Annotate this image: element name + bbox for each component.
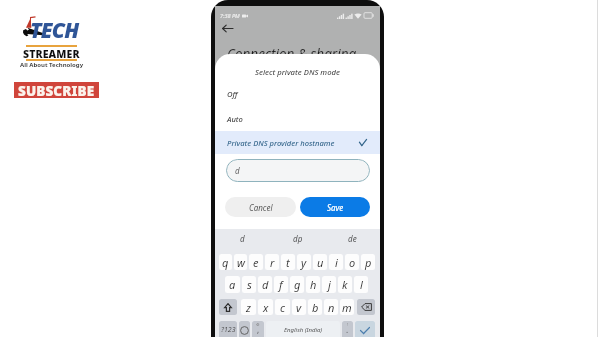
- staticText: m: [342, 300, 352, 315]
- staticText: Off: [227, 89, 238, 99]
- staticText: d: [235, 165, 240, 176]
- button[interactable]: q: [219, 254, 232, 270]
- staticText: j: [328, 277, 331, 292]
- staticText: English (India): [284, 326, 323, 334]
- staticText: Save: [327, 202, 344, 213]
- button[interactable]: t: [281, 254, 295, 270]
- button[interactable]: Shift: [219, 299, 237, 315]
- button[interactable]: j: [322, 276, 336, 293]
- button[interactable]: Back: [217, 18, 238, 39]
- staticText: ⚙: [256, 322, 260, 327]
- button[interactable]: Auto: [215, 107, 380, 130]
- staticText: x: [263, 300, 269, 315]
- button[interactable]: Enter: [355, 321, 375, 337]
- staticText: e: [253, 255, 259, 270]
- button[interactable]: Off: [215, 82, 380, 105]
- staticText: k: [342, 277, 348, 292]
- staticText: Select private DNS mode: [215, 67, 380, 77]
- staticText: s: [247, 277, 252, 292]
- button[interactable]: z: [241, 299, 256, 315]
- staticText: !: [347, 322, 349, 327]
- button[interactable]: i: [329, 254, 343, 270]
- staticText: w: [237, 255, 245, 270]
- staticText: g: [294, 277, 301, 292]
- button[interactable]: x: [258, 299, 273, 315]
- staticText: TECH: [30, 16, 79, 45]
- button[interactable]: h: [306, 276, 320, 293]
- staticText: Cancel: [249, 202, 273, 213]
- button[interactable]: d: [226, 159, 370, 182]
- button[interactable]: w: [234, 254, 247, 270]
- button[interactable]: g: [290, 276, 304, 293]
- button[interactable]: l: [354, 276, 368, 293]
- button[interactable]: Cancel: [225, 197, 296, 217]
- button[interactable]: e: [249, 254, 263, 270]
- staticText: Connection & sharing: [227, 45, 357, 63]
- staticText: f: [279, 277, 283, 292]
- button[interactable]: o: [345, 254, 359, 270]
- button[interactable]: k: [338, 276, 352, 293]
- button[interactable]: Save: [300, 197, 370, 217]
- staticText: Auto: [227, 114, 243, 124]
- staticText: SUBSCRIBE: [18, 82, 95, 98]
- button[interactable]: p: [361, 254, 375, 270]
- button[interactable]: d: [215, 229, 270, 248]
- button[interactable]: v: [292, 299, 306, 315]
- button[interactable]: u: [313, 254, 327, 270]
- staticText: d: [262, 277, 269, 292]
- button[interactable]: m: [340, 299, 354, 315]
- button[interactable]: a: [225, 276, 240, 293]
- button[interactable]: Backspace: [357, 299, 375, 315]
- staticText: n: [328, 300, 335, 315]
- button[interactable]: r: [265, 254, 279, 270]
- button[interactable]: Private DNS provider hostname: [215, 131, 380, 154]
- staticText: y: [301, 255, 307, 270]
- staticText: q: [222, 255, 229, 270]
- staticText: All About Technology: [20, 61, 84, 68]
- staticText: l: [360, 277, 363, 292]
- staticText: ,: [257, 324, 260, 335]
- button[interactable]: c: [275, 299, 290, 315]
- staticText: d: [240, 233, 245, 244]
- button[interactable]: Period: [342, 321, 353, 337]
- staticText: p: [365, 255, 372, 270]
- staticText: z: [246, 300, 251, 315]
- button[interactable]: Comma: [252, 321, 264, 337]
- button[interactable]: de: [325, 229, 380, 248]
- staticText: dp: [293, 233, 303, 244]
- staticText: Private DNS provider hostname: [227, 138, 335, 148]
- staticText: v: [296, 300, 302, 315]
- button[interactable]: s: [242, 276, 256, 293]
- button[interactable]: y: [297, 254, 311, 270]
- staticText: .: [346, 324, 349, 335]
- staticText: b: [312, 300, 319, 315]
- staticText: de: [348, 233, 357, 244]
- staticText: STREAMER: [23, 47, 80, 58]
- staticText: c: [280, 300, 285, 315]
- button[interactable]: n: [324, 299, 338, 315]
- button[interactable]: d: [258, 276, 272, 293]
- staticText: u: [317, 255, 324, 270]
- button[interactable]: English (India): [266, 321, 340, 337]
- staticText: o: [349, 255, 356, 270]
- staticText: a: [229, 277, 236, 292]
- button[interactable]: f: [274, 276, 288, 293]
- button[interactable]: Symbols: [219, 321, 237, 337]
- button[interactable]: SUBSCRIBE: [14, 82, 99, 98]
- staticText: 7:38 PM: [220, 12, 240, 19]
- staticText: ?123: [221, 325, 236, 335]
- button[interactable]: Emoji: [239, 321, 250, 337]
- staticText: t: [286, 255, 290, 270]
- staticText: h: [310, 277, 317, 292]
- staticText: i: [335, 255, 338, 270]
- button[interactable]: b: [308, 299, 322, 315]
- staticText: r: [270, 255, 275, 270]
- button[interactable]: dp: [270, 229, 325, 248]
